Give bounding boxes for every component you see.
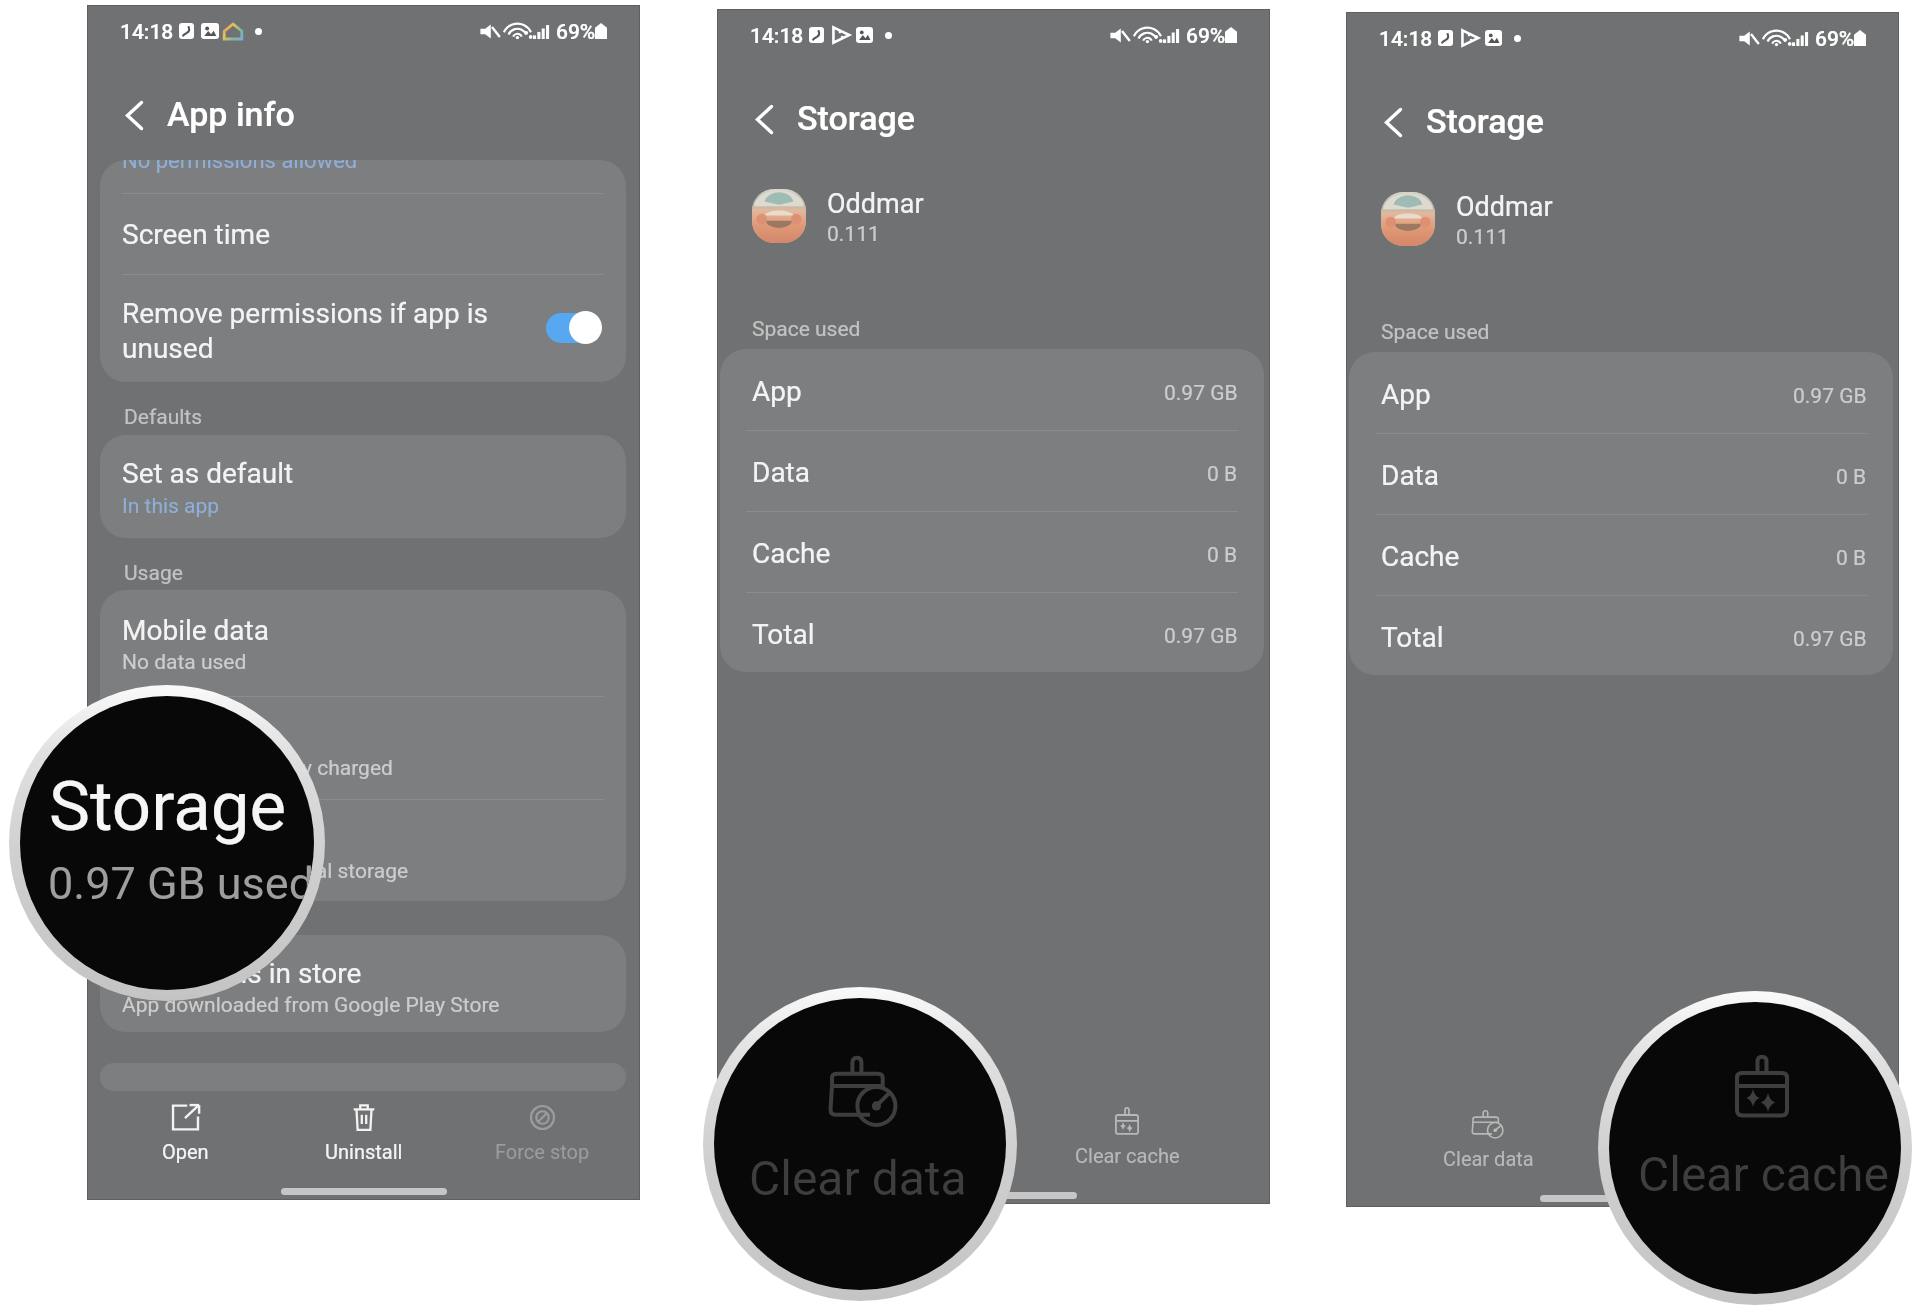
staticText: Force stop [495,1140,590,1163]
button[interactable]: No permissions allowed [100,160,626,193]
staticText: Mobile data [122,614,269,647]
button[interactable]: Clear data [1355,1096,1622,1184]
staticText: App [1381,378,1431,411]
staticText: Storage [797,98,916,138]
staticText: 69% [1815,27,1855,52]
staticText: App details in store [122,957,362,990]
staticText: Clear data [814,1144,905,1167]
staticText: Oddmar [827,188,924,220]
staticText: 0 B [1207,543,1238,568]
staticText: App [752,375,802,408]
staticText: 0.97 GB [1793,384,1867,409]
staticText: Cache [1381,540,1460,573]
button[interactable]: Data [1349,433,1893,513]
button[interactable]: Open [96,1089,275,1177]
staticText: 3 min use since fully charged [122,756,393,781]
staticText: No permissions allowed [122,160,358,174]
staticText: Total [1381,621,1444,654]
staticText: Clear cache [1638,1146,1889,1202]
staticText: Data [752,456,810,489]
button[interactable]: Battery [100,696,626,799]
staticText: 69% [556,20,596,45]
button[interactable]: Total [720,592,1264,672]
button[interactable]: App [1349,352,1893,432]
staticText: Data [1381,459,1439,492]
staticText: Total [752,618,815,651]
button[interactable]: Cache [720,511,1264,591]
staticText: Cache [752,537,831,570]
staticText: 0.111 [1456,225,1509,250]
staticText: Storage [1426,101,1545,141]
button[interactable]: Total [1349,595,1893,675]
staticText: 14:18 [750,24,804,49]
staticText: 14:18 [1379,27,1433,52]
staticText: Space used [752,317,861,342]
staticText: App downloaded from Google Play Store [122,993,500,1018]
staticText: Clear data [749,1150,967,1206]
button[interactable]: App [720,349,1264,429]
button[interactable]: Force stop [453,1089,631,1177]
button[interactable]: Clear cache [1622,1096,1890,1184]
staticText: Clear cache [1704,1147,1809,1170]
staticText: 0 B [1207,462,1238,487]
staticText: 0.97 GB used - internal storage [122,859,409,884]
button[interactable]: Clear cache [993,1093,1261,1181]
staticText: 0.97 GB [1793,627,1867,652]
staticText: Remove permissions if app is unused [122,297,552,365]
button[interactable]: App details in store [100,935,626,1032]
staticText: App info [167,94,295,134]
button[interactable]: Back [736,91,792,147]
staticText: Defaults [124,405,203,430]
button[interactable]: Data [720,430,1264,510]
button[interactable]: Back [106,87,162,143]
staticText: Usage [124,561,183,586]
staticText: Open [162,1140,209,1163]
staticText: Uninstall [325,1140,403,1163]
staticText: 69% [1186,24,1226,49]
staticText: 0 B [1836,546,1867,571]
button[interactable]: Remove permissions if app is unused [100,275,626,382]
staticText: Screen time [122,218,270,251]
staticText: Set as default [122,457,294,490]
button[interactable]: Back [1365,94,1421,150]
button[interactable]: Clear data [726,1093,993,1181]
staticText: 0.111 [827,222,880,247]
staticText: In this app [122,494,220,519]
staticText: No data used [122,650,247,675]
staticText: 0.97 GB [1164,381,1238,406]
staticText: Storage [122,823,219,856]
button[interactable]: Storage [100,799,626,901]
button[interactable]: Screen time [100,194,626,274]
staticText: Oddmar [1456,191,1553,223]
button[interactable]: Mobile data [100,590,626,696]
staticText: 0 B [1836,465,1867,490]
staticText: Clear data [1443,1147,1534,1170]
button[interactable]: Cache [1349,514,1893,594]
staticText: 14:18 [120,20,174,45]
staticText: Storage [49,766,287,847]
staticText: Clear cache [1075,1144,1180,1167]
button[interactable] [546,311,602,345]
button[interactable]: Uninstall [275,1089,453,1177]
staticText: 0.97 GB [1164,624,1238,649]
staticText: Space used [1381,320,1490,345]
button[interactable]: Set as default [100,435,626,538]
staticText: 0.97 GB used [48,857,314,910]
